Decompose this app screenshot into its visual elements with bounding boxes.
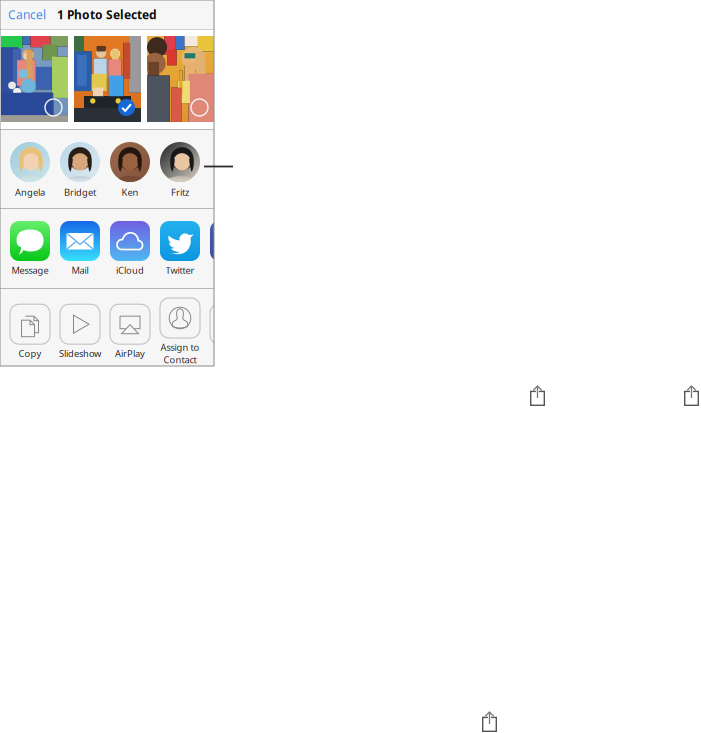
button[interactable]: Assign to <box>155 298 205 366</box>
button[interactable]: iCloud <box>105 221 155 276</box>
button[interactable]: Share <box>530 385 545 406</box>
staticText: Ken <box>121 186 138 198</box>
staticText: Contact <box>163 353 196 366</box>
button[interactable]: Mail <box>55 221 105 276</box>
staticText: Twitter <box>165 264 194 276</box>
staticText: Fritz <box>171 186 189 198</box>
button[interactable]: Cancel <box>0 0 46 29</box>
button[interactable] <box>205 304 255 360</box>
button[interactable]: Copy <box>5 304 55 360</box>
staticText: Cancel <box>8 6 46 22</box>
button[interactable]: Fritz <box>155 142 205 198</box>
button[interactable]: Bridget <box>55 142 105 198</box>
staticText: Copy <box>18 347 41 360</box>
button[interactable]: Share <box>482 711 497 732</box>
button[interactable]: Share <box>684 385 699 406</box>
button[interactable]: Angela <box>5 142 55 198</box>
staticText: iCloud <box>116 264 144 276</box>
staticText: Bridget <box>64 186 96 198</box>
staticText: Angela <box>15 186 45 198</box>
button[interactable]: Slideshow <box>55 304 105 360</box>
button[interactable]: Message <box>5 221 55 276</box>
staticText: AirPlay <box>115 347 145 360</box>
button[interactable]: Twitter <box>155 221 205 276</box>
button[interactable]: Ken <box>105 142 155 198</box>
staticText: Slideshow <box>59 347 101 360</box>
staticText: Message <box>11 264 48 276</box>
button[interactable]: AirPlay <box>105 304 155 360</box>
staticText: Mail <box>71 264 88 276</box>
staticText: 1 Photo Selected <box>57 6 157 22</box>
button[interactable] <box>205 221 255 276</box>
staticText: Assign to <box>160 341 199 353</box>
